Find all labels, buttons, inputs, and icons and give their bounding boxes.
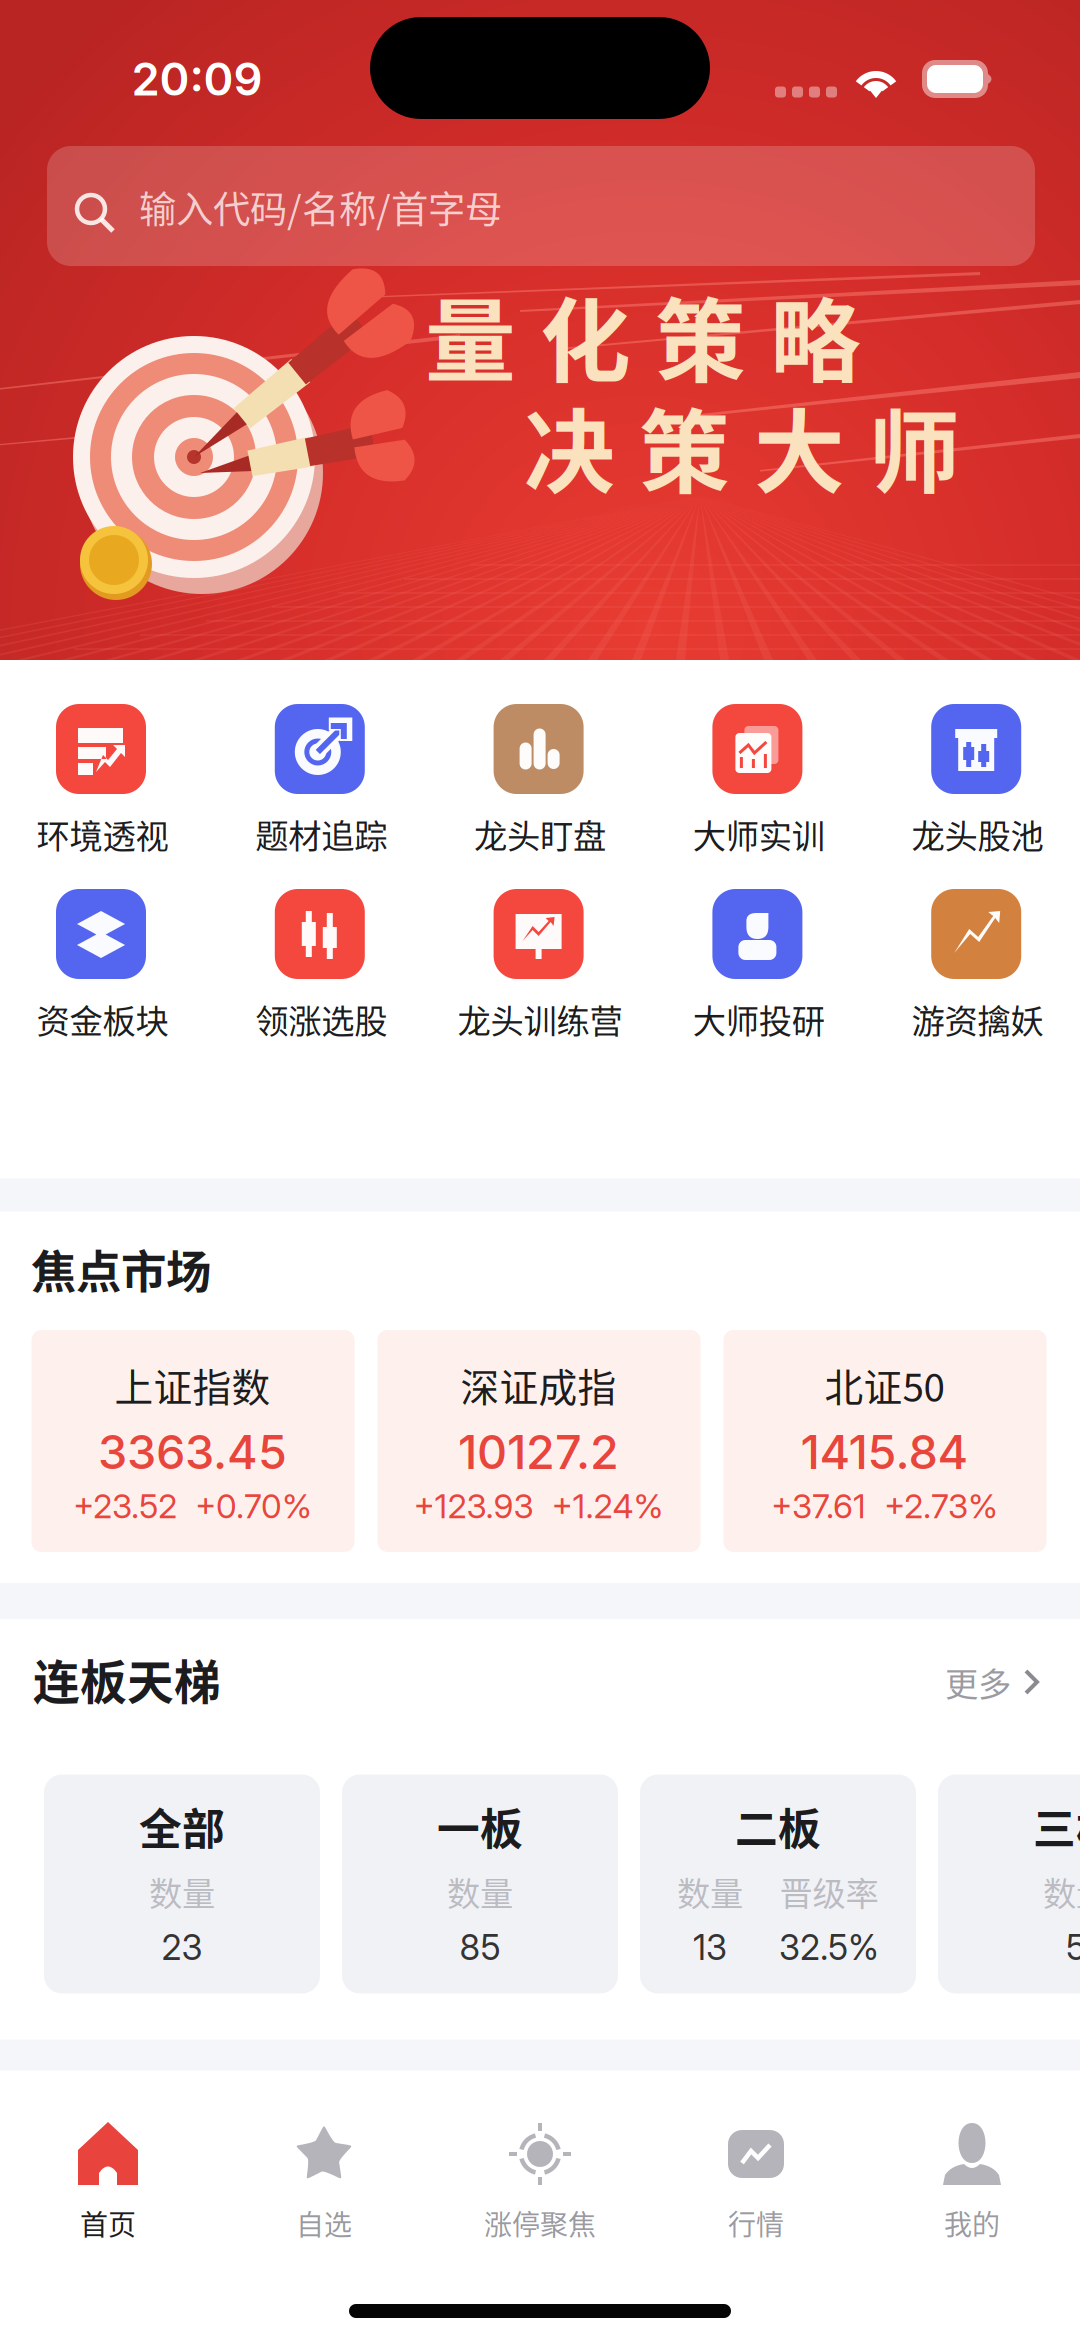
staticText: 32.5% xyxy=(779,1926,879,1968)
staticText: 环境透视 xyxy=(36,810,168,858)
button[interactable]: 行情 xyxy=(648,2118,864,2258)
button[interactable]: 我的 xyxy=(864,2118,1080,2258)
staticText: 涨停聚焦 xyxy=(484,2203,596,2243)
staticText: 5 xyxy=(1066,1926,1080,1968)
staticText: 三板 xyxy=(1033,1796,1080,1857)
button[interactable]: 深证成指 xyxy=(377,1330,700,1552)
staticText: +0.70% xyxy=(195,1486,312,1526)
staticText: 二板 xyxy=(735,1796,821,1857)
button[interactable]: 环境透视 xyxy=(0,703,212,863)
staticText: 自选 xyxy=(296,2203,352,2243)
staticText: +123.93 xyxy=(413,1486,533,1526)
button[interactable]: 资金板块 xyxy=(0,888,212,1048)
button[interactable]: 一板 xyxy=(342,1774,618,1993)
staticText: 数量 xyxy=(1043,1867,1080,1916)
button[interactable]: 领涨选股 xyxy=(212,888,431,1048)
button[interactable]: 上证指数 xyxy=(31,1330,354,1552)
button[interactable]: 二板 xyxy=(640,1774,916,1993)
staticText: +2.73% xyxy=(884,1486,998,1526)
staticText: 数量 xyxy=(677,1867,743,1916)
staticText: +37.61 xyxy=(771,1486,866,1526)
staticText: 首页 xyxy=(80,2203,136,2243)
button[interactable]: 游资擒妖 xyxy=(868,888,1080,1048)
staticText: 龙头盯盘 xyxy=(474,810,606,858)
button[interactable]: 全部 xyxy=(44,1774,320,1993)
button[interactable]: 涨停聚焦 xyxy=(432,2118,648,2258)
button[interactable]: 首页 xyxy=(0,2118,216,2258)
staticText: 更多 xyxy=(945,1658,1011,1706)
staticText: 题材追踪 xyxy=(255,810,387,858)
staticText: 龙头训练营 xyxy=(457,995,622,1043)
staticText: 数量 xyxy=(447,1867,513,1916)
button[interactable]: 题材追踪 xyxy=(212,703,431,863)
button[interactable]: 北证50 xyxy=(723,1330,1046,1552)
staticText: 全部 xyxy=(139,1796,225,1857)
staticText: 连板天梯 xyxy=(33,1645,221,1713)
staticText: 焦点市场 xyxy=(31,1236,211,1302)
staticText: 1415.84 xyxy=(800,1424,968,1480)
staticText: 龙头股池 xyxy=(912,810,1044,858)
staticText: 23 xyxy=(161,1926,202,1968)
button[interactable]: 龙头股池 xyxy=(868,703,1080,863)
staticText: 领涨选股 xyxy=(255,995,387,1043)
staticText: 输入代码/名称/首字母 xyxy=(139,180,502,234)
staticText: 20:09 xyxy=(131,52,262,106)
staticText: 北证50 xyxy=(824,1357,944,1413)
staticText: 深证成指 xyxy=(460,1357,616,1413)
staticText: 量化策略 xyxy=(425,269,861,401)
button[interactable]: 大师实训 xyxy=(649,703,868,863)
staticText: 晋级率 xyxy=(779,1867,878,1916)
button[interactable]: 三板 xyxy=(938,1774,1080,1993)
staticText: +23.52 xyxy=(73,1486,177,1526)
staticText: 上证指数 xyxy=(114,1357,270,1413)
staticText: 3363.45 xyxy=(98,1424,287,1480)
button[interactable]: 大师投研 xyxy=(649,888,868,1048)
staticText: 一板 xyxy=(437,1796,523,1857)
staticText: 资金板块 xyxy=(36,995,168,1043)
staticText: 大师投研 xyxy=(693,995,825,1043)
button[interactable]: 自选 xyxy=(216,2118,432,2258)
staticText: 我的 xyxy=(944,2203,1000,2243)
staticText: 85 xyxy=(459,1926,500,1968)
staticText: 数量 xyxy=(149,1867,215,1916)
button[interactable]: 输入代码/名称/首字母 xyxy=(47,146,1035,266)
staticText: 大师实训 xyxy=(693,810,825,858)
button[interactable]: 更多 xyxy=(920,1652,1040,1712)
staticText: +1.24% xyxy=(551,1486,663,1526)
button[interactable]: 龙头训练营 xyxy=(431,888,649,1048)
button[interactable]: 龙头盯盘 xyxy=(431,703,649,863)
staticText: 决策大师 xyxy=(524,380,960,512)
staticText: 行情 xyxy=(728,2203,784,2243)
staticText: 游资擒妖 xyxy=(912,995,1044,1043)
staticText: 10127.2 xyxy=(458,1424,619,1480)
staticText: 13 xyxy=(693,1926,727,1968)
